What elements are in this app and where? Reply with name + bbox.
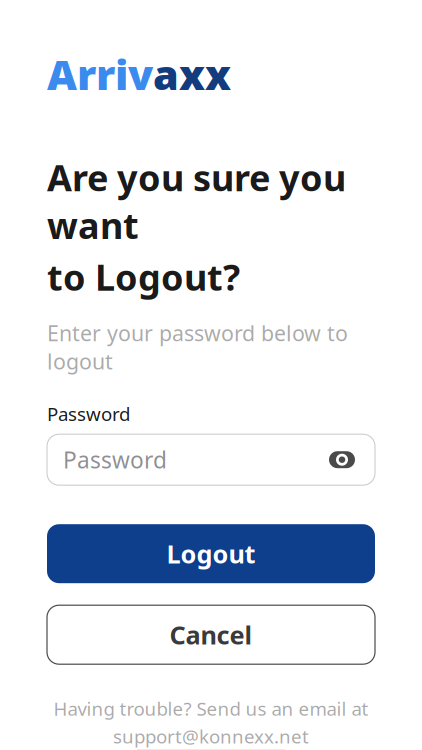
staticText: Having trouble? Send us an email at: [53, 696, 368, 721]
button[interactable]: Cancel: [47, 605, 375, 664]
staticText: Logout: [166, 537, 255, 570]
staticText: Password: [63, 445, 167, 475]
staticText: to Logout?: [47, 253, 240, 301]
staticText: Are you sure you want: [47, 153, 346, 249]
staticText: axx: [153, 46, 231, 101]
button[interactable]: Having trouble? Send us an email at: [47, 696, 375, 750]
staticText: support@konnexx.net: [113, 724, 309, 749]
button[interactable]: Logout: [47, 524, 375, 583]
staticText: Cancel: [169, 618, 252, 651]
button[interactable]: Show password: [325, 443, 359, 477]
staticText: Enter your password below to logout: [47, 319, 348, 375]
staticText: Arriv: [47, 46, 153, 101]
staticText: Password: [47, 401, 130, 426]
